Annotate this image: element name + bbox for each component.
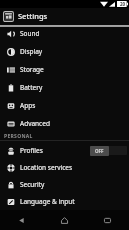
staticText: OFF [95, 148, 104, 154]
staticText: Display [20, 47, 43, 56]
button[interactable]: Storage [0, 60, 129, 78]
staticText: Settings [18, 11, 48, 21]
staticText: Apps [20, 101, 36, 110]
button[interactable]: Apps [0, 96, 129, 114]
button[interactable]: Home [43, 210, 86, 230]
button[interactable]: Security [0, 176, 129, 193]
button[interactable]: Sound [0, 24, 129, 42]
button[interactable]: Recents [86, 210, 129, 230]
staticText: Location services [20, 163, 73, 172]
button[interactable]: Language & input [0, 193, 129, 210]
button[interactable]: Location services [0, 159, 129, 176]
button[interactable]: Battery [0, 78, 129, 96]
staticText: Storage [20, 65, 44, 74]
staticText: 20 [120, 1, 126, 7]
staticText: Security [20, 180, 45, 189]
staticText: Battery [20, 83, 43, 92]
button[interactable]: Advanced [0, 114, 129, 132]
button[interactable]: Display [0, 42, 129, 60]
staticText: PERSONAL [4, 133, 33, 140]
staticText: Profiles [20, 146, 43, 155]
staticText: Language & input [20, 197, 75, 206]
staticText: Advanced [20, 119, 50, 128]
staticText: Sound [20, 29, 40, 38]
button[interactable]: Profiles [0, 141, 129, 159]
button[interactable]: Back [0, 210, 43, 230]
button[interactable]: OFF [90, 145, 127, 156]
